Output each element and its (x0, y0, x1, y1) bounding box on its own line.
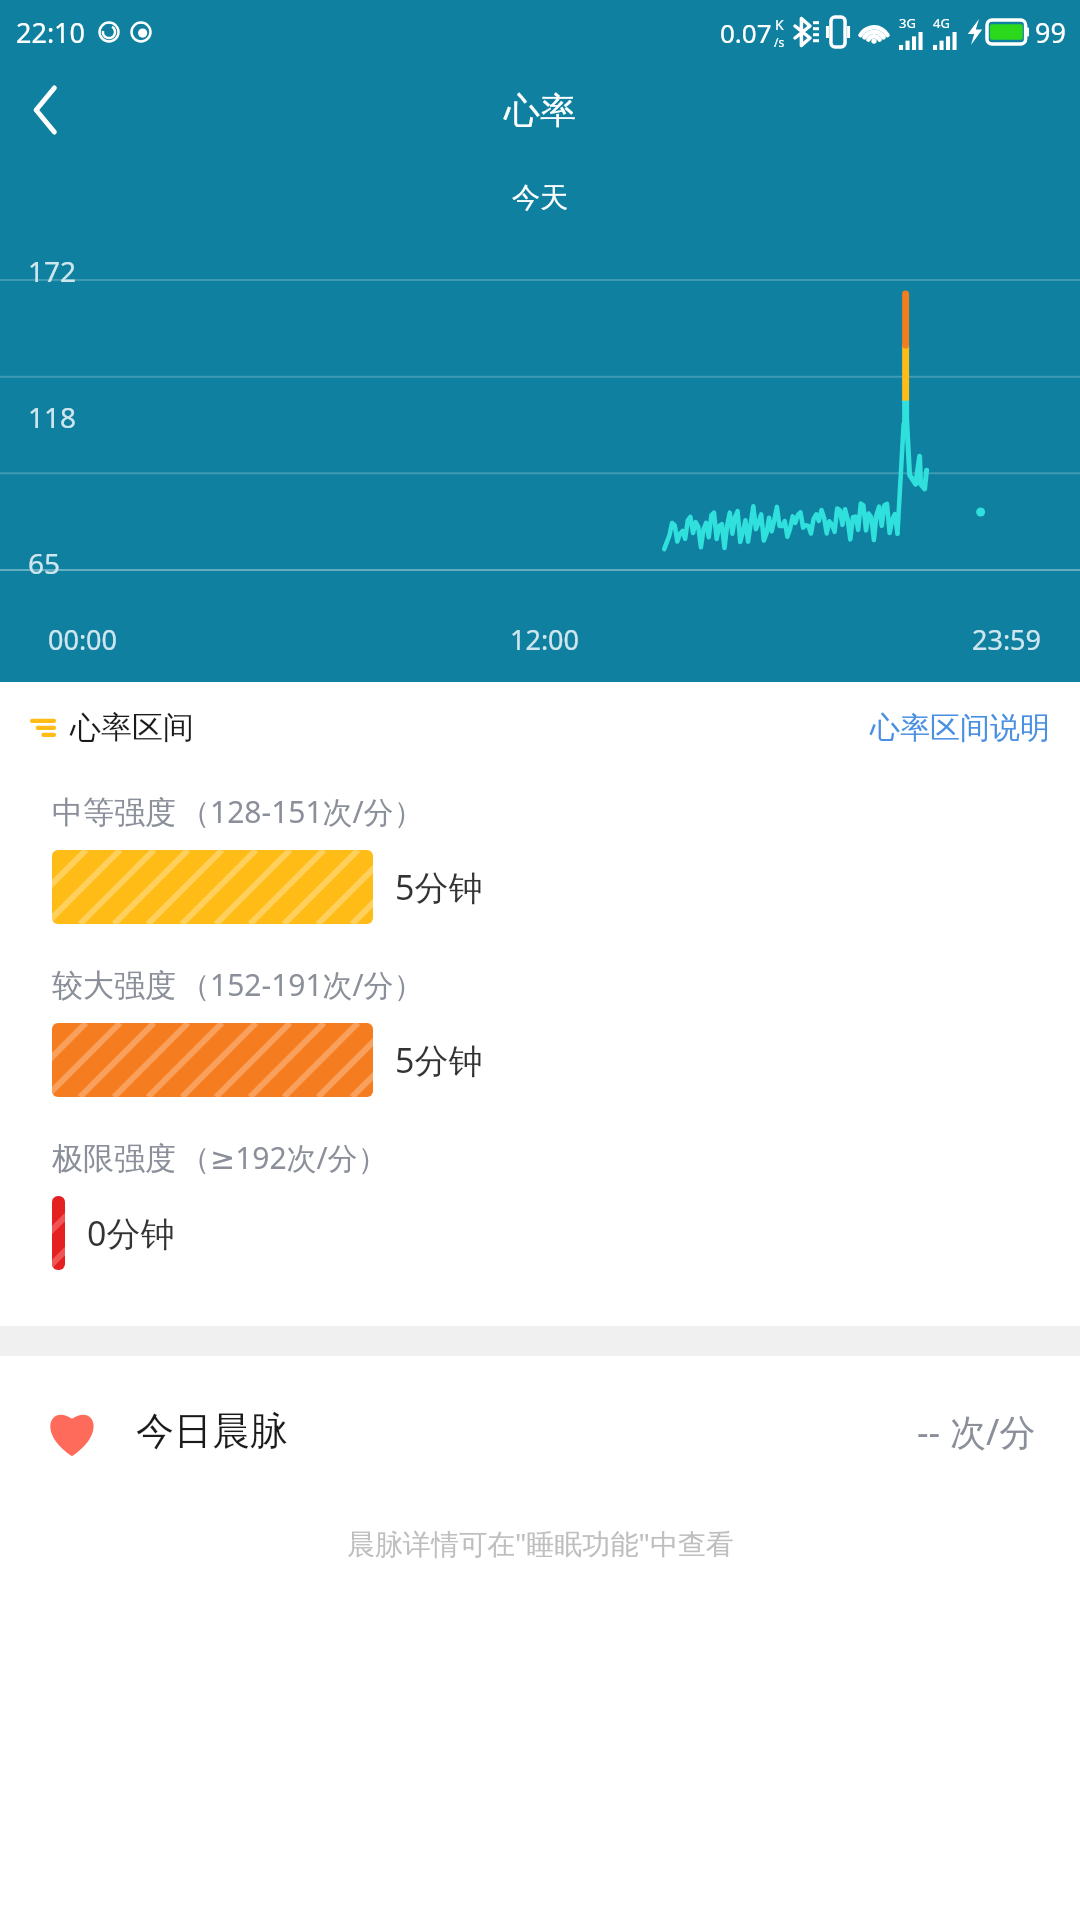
staticText: 118 (28, 398, 77, 436)
staticText: 心率区间说明 (870, 709, 1050, 747)
staticText: 12:00 (510, 621, 580, 658)
staticText: 5分钟 (395, 1037, 483, 1083)
button[interactable]: 心率区间说明 (870, 709, 1050, 747)
staticText: 中等强度 (52, 793, 176, 832)
staticText: 172 (28, 252, 77, 290)
staticText: 4G (933, 14, 950, 32)
staticText: （152-191次/分） (180, 964, 424, 1005)
staticText: 次/分 (950, 1407, 1036, 1456)
staticText: 3G (899, 14, 916, 32)
button[interactable]: Back (0, 64, 92, 156)
staticText: 今日晨脉 (136, 1407, 288, 1455)
staticText: 0.07 (720, 15, 772, 50)
staticText: 65 (28, 544, 61, 582)
staticText: K (775, 15, 784, 34)
staticText: 23:59 (972, 621, 1042, 658)
staticText: -- (917, 1407, 950, 1456)
staticText: 心率区间 (70, 708, 194, 747)
staticText: 今天 (512, 180, 568, 215)
button[interactable]: 心率区间 (30, 708, 194, 747)
staticText: （≥192次/分） (180, 1137, 388, 1178)
staticText: 22:10 (16, 14, 86, 51)
staticText: 0分钟 (87, 1210, 175, 1256)
staticText: 极限强度 (52, 1139, 176, 1178)
staticText: 较大强度 (52, 966, 176, 1005)
staticText: 00:00 (48, 621, 118, 658)
staticText: 99 (1035, 14, 1066, 51)
staticText: （128-151次/分） (180, 791, 424, 832)
button[interactable]: 今日晨脉 (0, 1356, 1080, 1506)
staticText: 5分钟 (395, 864, 483, 910)
staticText: 心率 (504, 88, 576, 133)
staticText: 晨脉详情可在"睡眠功能"中查看 (347, 1524, 734, 1562)
staticText: /s (774, 34, 785, 50)
